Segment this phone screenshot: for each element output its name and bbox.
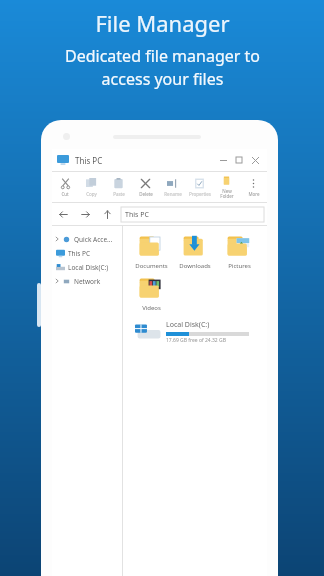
button[interactable]: Paste: [105, 172, 132, 202]
button[interactable]: Documents: [129, 231, 173, 270]
button[interactable]: Pictures: [217, 231, 261, 270]
button[interactable]: Downloads: [173, 231, 217, 270]
staticText: 17.69 GB free of 24.32 GB: [166, 337, 226, 344]
staticText: Local Disk(C:): [166, 320, 210, 330]
staticText: Local Disk(C:): [68, 263, 109, 272]
button[interactable]: This PC: [54, 246, 122, 260]
staticText: File Manager: [95, 8, 230, 38]
button[interactable]: Up: [96, 203, 118, 225]
staticText: Network: [74, 277, 101, 286]
staticText: Downloads: [179, 262, 211, 270]
button[interactable]: Properties: [186, 172, 213, 202]
staticText: Quick Acce...: [74, 235, 113, 244]
button[interactable]: Local Disk(C:): [54, 260, 122, 274]
button[interactable]: Back: [52, 203, 74, 225]
button[interactable]: This PC: [121, 207, 264, 222]
button[interactable]: Forward: [74, 203, 96, 225]
staticText: Videos: [142, 304, 161, 312]
staticText: Copy: [86, 191, 97, 197]
button[interactable]: Quick Acce...: [54, 232, 122, 246]
staticText: Pictures: [228, 262, 251, 270]
button[interactable]: Local Disk(C:): [135, 320, 267, 344]
button[interactable]: New Folder: [213, 172, 240, 202]
button[interactable]: Videos: [129, 273, 173, 312]
staticText: Rename: [164, 191, 182, 197]
staticText: Cut: [61, 191, 69, 197]
staticText: Paste: [113, 191, 125, 197]
button[interactable]: Rename: [159, 172, 186, 202]
button[interactable]: Cut: [52, 172, 78, 202]
staticText: New Folder: [220, 188, 234, 199]
staticText: Dedicated file manager to access your fi…: [65, 45, 260, 90]
button[interactable]: Network: [54, 274, 122, 288]
staticText: Documents: [135, 262, 168, 270]
button[interactable]: Delete: [132, 172, 159, 202]
button[interactable]: Copy: [78, 172, 105, 202]
button[interactable]: Close: [247, 152, 263, 168]
staticText: This PC: [68, 249, 91, 258]
staticText: Properties: [189, 191, 211, 197]
staticText: Delete: [139, 191, 153, 197]
staticText: More: [248, 191, 260, 197]
staticText: This PC: [125, 210, 149, 220]
button[interactable]: Minimize: [215, 152, 231, 168]
staticText: This PC: [75, 155, 103, 166]
button[interactable]: More: [240, 172, 267, 202]
button[interactable]: Maximize: [231, 152, 247, 168]
